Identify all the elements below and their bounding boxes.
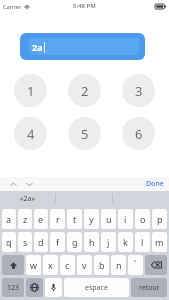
button[interactable]: Shift bbox=[2, 255, 24, 275]
button[interactable]: Backspace bbox=[145, 255, 167, 275]
button[interactable]: i bbox=[118, 209, 133, 229]
staticText: Carrier bbox=[3, 3, 22, 10]
button[interactable]: Dictate bbox=[45, 278, 62, 297]
button[interactable]: 3 bbox=[122, 74, 155, 107]
button[interactable]: m bbox=[152, 232, 167, 252]
button[interactable]: e bbox=[34, 209, 48, 229]
button[interactable]: espace bbox=[64, 278, 129, 297]
button[interactable]: j bbox=[101, 232, 116, 252]
staticText: f bbox=[56, 236, 60, 248]
staticText: p bbox=[157, 213, 163, 225]
staticText: n bbox=[116, 259, 122, 271]
button[interactable]: w bbox=[26, 255, 41, 275]
staticText: 6 bbox=[135, 125, 143, 143]
staticText: r bbox=[56, 213, 60, 225]
button[interactable]: c bbox=[60, 255, 75, 275]
staticText: 5:48 PM bbox=[73, 2, 96, 10]
button[interactable]: ' bbox=[128, 255, 143, 275]
staticText: c bbox=[65, 259, 70, 271]
staticText: k bbox=[123, 236, 128, 248]
button[interactable]: y bbox=[84, 209, 99, 229]
button[interactable]: n bbox=[111, 255, 126, 275]
staticText: Done bbox=[146, 179, 164, 189]
button[interactable]: 6 bbox=[122, 117, 155, 150]
staticText: 4 bbox=[27, 125, 35, 143]
staticText: b bbox=[99, 259, 105, 271]
button[interactable]: x bbox=[43, 255, 58, 275]
button[interactable]: Change keyboard bbox=[26, 278, 43, 297]
staticText: h bbox=[89, 236, 95, 248]
staticText: t bbox=[73, 213, 77, 225]
staticText: 3 bbox=[135, 82, 143, 100]
button[interactable]: 2 bbox=[68, 74, 101, 107]
button[interactable]: o bbox=[135, 209, 150, 229]
button[interactable]: z bbox=[18, 209, 32, 229]
staticText: retour bbox=[139, 283, 160, 293]
button[interactable]: s bbox=[18, 232, 32, 252]
button[interactable]: retour bbox=[131, 278, 167, 297]
staticText: z bbox=[23, 213, 28, 225]
staticText: m bbox=[155, 236, 164, 248]
button[interactable]: h bbox=[84, 232, 99, 252]
button[interactable]: f bbox=[50, 232, 65, 252]
staticText: 5 bbox=[81, 125, 89, 143]
staticText: v bbox=[82, 259, 87, 271]
button[interactable]: 1 bbox=[14, 74, 47, 107]
staticText: 1 bbox=[27, 82, 35, 100]
staticText: u bbox=[106, 213, 112, 225]
staticText: y bbox=[89, 213, 94, 225]
staticText: 2a bbox=[32, 41, 43, 53]
button[interactable]: r bbox=[50, 209, 65, 229]
button[interactable]: 2a bbox=[20, 33, 145, 60]
button[interactable]: q bbox=[2, 232, 16, 252]
staticText: 123 bbox=[7, 283, 20, 293]
button[interactable]: v bbox=[77, 255, 92, 275]
button[interactable]: p bbox=[152, 209, 167, 229]
staticText: espace bbox=[85, 283, 108, 293]
button[interactable]: «2a» bbox=[0, 191, 55, 206]
staticText: o bbox=[140, 213, 146, 225]
staticText: w bbox=[30, 259, 38, 271]
staticText: ' bbox=[134, 257, 137, 269]
button[interactable]: t bbox=[67, 209, 82, 229]
button[interactable]: Previous field bbox=[7, 178, 19, 190]
staticText: q bbox=[6, 236, 12, 248]
staticText: s bbox=[23, 236, 28, 248]
button[interactable]: k bbox=[118, 232, 133, 252]
staticText: d bbox=[38, 236, 44, 248]
staticText: x bbox=[48, 259, 53, 271]
staticText: e bbox=[38, 213, 44, 225]
staticText: «2a» bbox=[20, 194, 36, 204]
button[interactable]: 123 bbox=[2, 278, 24, 297]
button[interactable]: Next field bbox=[23, 178, 35, 190]
staticText: j bbox=[107, 236, 110, 248]
button[interactable]: u bbox=[101, 209, 116, 229]
button[interactable]: Done bbox=[146, 179, 164, 189]
button[interactable]: g bbox=[67, 232, 82, 252]
staticText: i bbox=[124, 213, 127, 225]
button[interactable]: 4 bbox=[14, 117, 47, 150]
button[interactable]: l bbox=[135, 232, 150, 252]
button[interactable]: d bbox=[34, 232, 48, 252]
staticText: g bbox=[72, 236, 78, 248]
button[interactable]: b bbox=[94, 255, 109, 275]
button[interactable]: 5 bbox=[68, 117, 101, 150]
button[interactable]: a bbox=[2, 209, 16, 229]
staticText: 2 bbox=[81, 82, 89, 100]
staticText: a bbox=[6, 213, 12, 225]
staticText: l bbox=[141, 236, 144, 248]
